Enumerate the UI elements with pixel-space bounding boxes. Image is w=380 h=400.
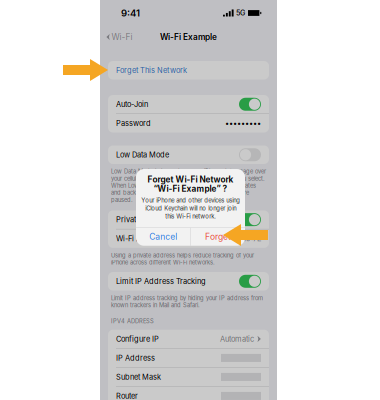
staticText: 9:41 <box>121 9 140 17</box>
staticText: Configure IP <box>116 336 159 342</box>
button[interactable]: Wi-Fi <box>103 29 135 45</box>
staticText: Limit IP Address Tracking <box>116 278 206 284</box>
staticText: Cancel <box>149 233 177 240</box>
staticText: Wi-Fi Example <box>160 33 217 41</box>
button[interactable]: Cancel <box>136 228 190 246</box>
staticText: Router <box>116 393 138 399</box>
staticText: IPV4 ADDRESS <box>111 319 154 324</box>
staticText: Private Wi-Fi Address <box>116 216 192 223</box>
staticText: Forget This Network <box>116 67 187 73</box>
button[interactable]: Forget This Network <box>100 61 269 79</box>
staticText: IP Address <box>116 355 155 361</box>
staticText: Auto-Join <box>116 101 148 107</box>
staticText: Password <box>116 120 151 126</box>
staticText: Wi-Fi <box>111 33 132 41</box>
staticText: Low Data Mode <box>116 151 169 158</box>
staticText: Wi-Fi Address <box>116 235 166 242</box>
staticText: Using a private address helps reduce tra… <box>111 252 254 266</box>
staticText: Low Data Mode helps reduce your iPhone d… <box>111 168 266 203</box>
staticText: Automatic <box>220 336 254 342</box>
staticText: “Wi-Fi Example” ? <box>153 185 227 192</box>
staticText: Limit IP address tracking by hiding your… <box>111 294 263 309</box>
staticText: ••••••••• <box>225 120 261 126</box>
staticText: Subnet Mask <box>116 374 161 380</box>
button[interactable]: Forget <box>191 228 245 246</box>
staticText: Your iPhone and other devices using iClo… <box>141 196 240 220</box>
staticText: Forget <box>205 233 231 240</box>
staticText: 5G <box>236 10 245 16</box>
staticText: Forget Wi-Fi Network <box>147 176 233 183</box>
staticText: A2:81:4F:C0:19:7E <box>198 235 261 242</box>
